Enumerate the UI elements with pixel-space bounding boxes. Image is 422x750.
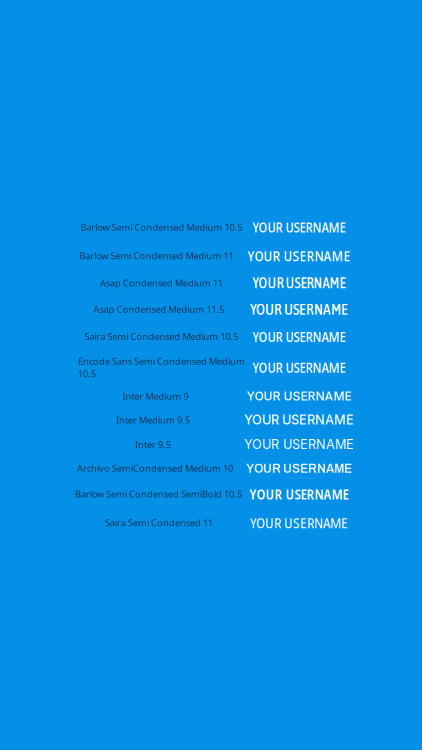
staticText: YOUR USERNAME [250, 300, 348, 318]
staticText: Barlow Semi Condensed Medium 10.5 [80, 221, 242, 233]
staticText: Asap Condensed Medium 11.5 [93, 303, 224, 315]
staticText: YOUR USERNAME [244, 412, 354, 428]
staticText: YOUR USERNAME [252, 327, 345, 346]
staticText: YOUR USERNAME [244, 437, 354, 452]
staticText: Barlow Semi Condensed SemiBold 10.5 [75, 488, 242, 500]
staticText: YOUR USERNAME [252, 358, 345, 377]
staticText: Saira Semi Condensed Medium 10.5 [84, 330, 238, 343]
staticText: Encode Sans Semi Condensed Medium 10.5 [78, 355, 245, 380]
staticText: Asap Condensed Medium 11 [100, 277, 223, 289]
staticText: Inter Medium 9.5 [116, 414, 190, 426]
staticText: Archivo SemiCondensed Medium 10 [77, 462, 233, 474]
staticText: YOUR USERNAME [247, 246, 350, 266]
staticText: YOUR USERNAME [246, 389, 351, 403]
staticText: YOUR USERNAME [252, 217, 345, 237]
staticText: YOUR USERNAME [250, 512, 348, 532]
staticText: YOUR USERNAME [252, 274, 345, 291]
staticText: Barlow Semi Condensed Medium 11 [79, 249, 233, 262]
staticText: Inter Medium 9 [122, 390, 188, 402]
staticText: YOUR USERNAME [249, 484, 348, 504]
staticText: Saira Semi Condensed 11 [105, 516, 213, 529]
staticText: YOUR USERNAME [246, 461, 352, 475]
staticText: Inter 9.5 [135, 438, 171, 450]
